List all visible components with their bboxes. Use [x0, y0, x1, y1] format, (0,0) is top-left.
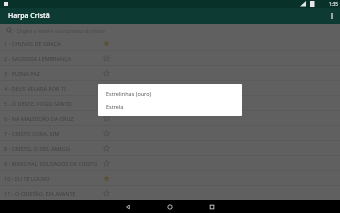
staticText: 4 - DEUS VELARÁ POR TI [4, 85, 99, 92]
button[interactable]: 9 - MARCHAI, SOLDADOS DE CRISTO [0, 156, 340, 170]
button[interactable]: Add favourite [99, 66, 113, 80]
button[interactable]: Add favourite [99, 96, 113, 110]
staticText: Estrela [106, 103, 124, 110]
button[interactable]: Recent apps [191, 200, 233, 213]
button[interactable]: 4 - DEUS VELARÁ POR TI [0, 81, 340, 95]
button[interactable]: 10 - EU TE LOUVO [0, 171, 340, 185]
staticText: 10 - EU TE LOUVO [4, 175, 99, 182]
button[interactable]: Estrela [98, 100, 242, 113]
staticText: Digite o nome ou número do hino [17, 27, 105, 34]
button[interactable]: Remove favourite [99, 36, 113, 50]
button[interactable]: Add favourite [99, 126, 113, 140]
button[interactable]: 1 - CHUVAS DE GRAÇA [0, 36, 340, 50]
staticText: 3 - PLENA PAZ [4, 70, 99, 77]
button[interactable]: Home [149, 200, 191, 213]
staticText: 2 - SAUDOSA LEMBRANÇA [4, 55, 99, 62]
button[interactable]: Add favourite [99, 141, 113, 155]
button[interactable]: Add favourite [99, 111, 113, 125]
button[interactable]: Estrelinhas (ouro) [98, 87, 242, 100]
staticText: 5 - Ó DESCE, FOGO SANTO [4, 100, 99, 107]
staticText: 7 - CRISTO CURA, SIM [4, 130, 99, 137]
staticText: 6 - NA MALDIÇÃO DA CRUZ [4, 115, 99, 122]
button[interactable]: 12 - GLÓRIA AO SALVADOR [0, 201, 340, 213]
button[interactable]: 6 - NA MALDIÇÃO DA CRUZ [0, 111, 340, 125]
button[interactable]: Add favourite [99, 51, 113, 65]
staticText: 1:35 [329, 1, 338, 7]
button[interactable]: More options [324, 8, 340, 24]
staticText: 8 - CRISTO, O FIEL AMIGO [4, 145, 99, 152]
staticText: Harpa Cristã [8, 11, 50, 21]
staticText: Estrelinhas (ouro) [106, 90, 152, 97]
staticText: 11 - Ó CRISTÃO, EIA AVANTE [4, 190, 99, 197]
button[interactable]: 5 - Ó DESCE, FOGO SANTO [0, 96, 340, 110]
other: Search [6, 27, 13, 34]
button[interactable]: Remove favourite [99, 171, 113, 185]
staticText: 9 - MARCHAI, SOLDADOS DE CRISTO [4, 160, 99, 167]
button[interactable]: Add favourite [99, 156, 113, 170]
button[interactable]: Add favourite [99, 81, 113, 95]
button[interactable]: Add favourite [99, 186, 113, 200]
button[interactable]: Back [107, 200, 149, 213]
staticText: 1 - CHUVAS DE GRAÇA [4, 40, 99, 47]
